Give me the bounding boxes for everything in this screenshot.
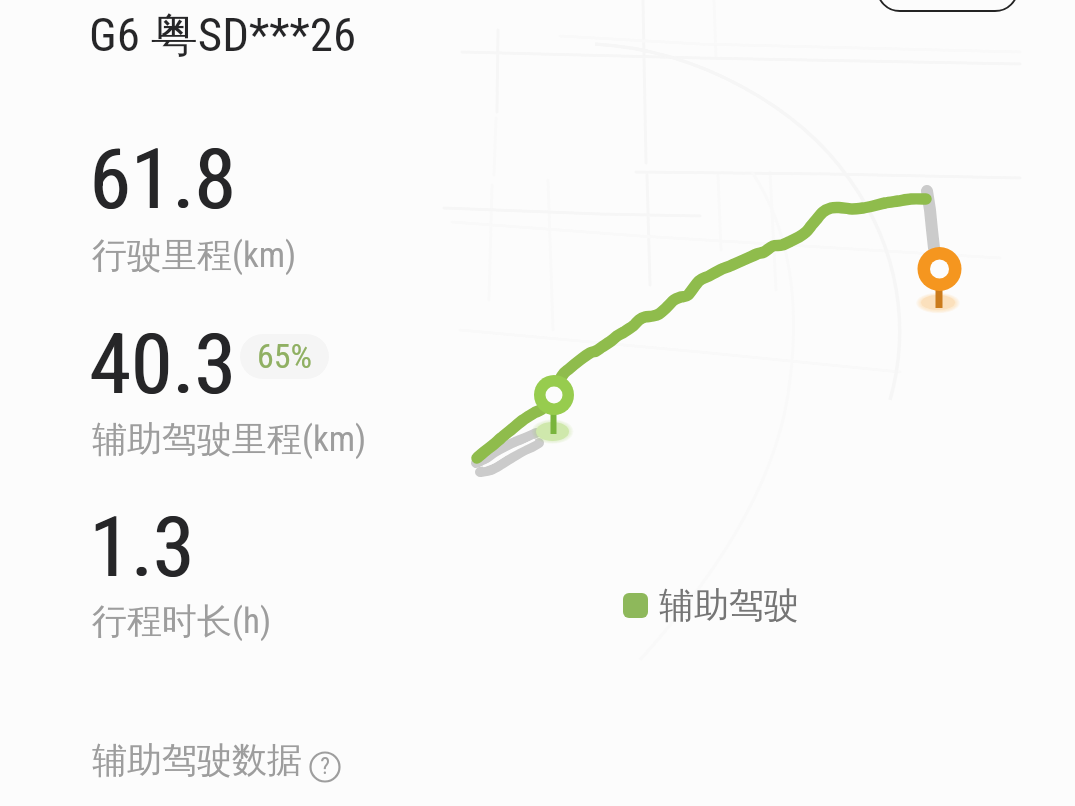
staticText: 行程时长(h) — [92, 599, 272, 643]
button[interactable]: 65% — [240, 334, 329, 379]
staticText: 40.3 — [89, 315, 236, 413]
staticText: 辅助驾驶 — [659, 583, 799, 627]
staticText: G6 粤SD***26 — [89, 6, 357, 65]
button[interactable]: 辅助驾驶数据 — [92, 738, 340, 782]
button[interactable]: 辅助驾驶 — [623, 583, 799, 627]
staticText: 辅助驾驶数据 — [92, 738, 302, 782]
staticText: 1.3 — [90, 498, 196, 596]
staticText: 40.3 — [90, 315, 237, 413]
staticText: 65% — [257, 336, 313, 376]
staticText: 61.8 — [89, 130, 236, 228]
staticText: 辅助驾驶里程(km) — [92, 417, 367, 461]
staticText: 1.3 — [89, 498, 195, 596]
staticText: ? — [320, 753, 330, 780]
button[interactable]: Vehicle selector — [877, 0, 1018, 11]
staticText: 行驶里程(km) — [92, 233, 297, 277]
staticText: 61.8 — [90, 130, 237, 228]
other: Trip route map — [0, 0, 1075, 806]
